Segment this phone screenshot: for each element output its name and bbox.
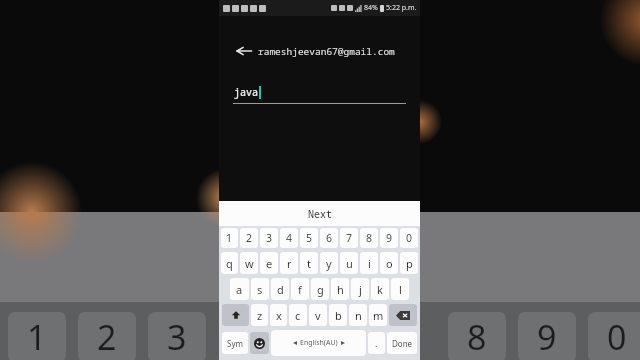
button[interactable]: 7 xyxy=(340,228,358,248)
staticText: Done xyxy=(392,338,413,349)
button[interactable]: w xyxy=(240,252,258,274)
button[interactable]: x xyxy=(270,304,287,326)
staticText: o xyxy=(386,256,393,271)
staticText: 84% xyxy=(364,3,378,13)
button[interactable]: 1 xyxy=(221,228,238,248)
staticText: y xyxy=(326,256,332,271)
button[interactable]: Emoji xyxy=(250,332,269,354)
button[interactable]: f xyxy=(291,278,309,300)
button[interactable]: English(AU) xyxy=(271,330,366,356)
staticText: 5 xyxy=(306,231,313,245)
button[interactable]: t xyxy=(300,252,318,274)
staticText: 8 xyxy=(366,231,373,245)
button[interactable]: z xyxy=(251,304,268,326)
button[interactable]: e xyxy=(260,252,278,274)
staticText: rameshjeevan67@gmail.com xyxy=(258,45,395,58)
staticText: 9 xyxy=(537,314,557,360)
button[interactable]: k xyxy=(371,278,389,300)
button[interactable]: 8 xyxy=(360,228,378,248)
staticText: 6 xyxy=(326,231,333,245)
staticText: h xyxy=(337,282,344,297)
staticText: l xyxy=(399,282,402,297)
button[interactable]: 0 xyxy=(400,228,418,248)
button[interactable]: 4 xyxy=(280,228,298,248)
staticText: 9 xyxy=(386,231,393,245)
staticText: x xyxy=(276,308,282,323)
staticText: . xyxy=(375,337,378,349)
staticText: 2 xyxy=(246,231,253,245)
staticText: r xyxy=(287,256,292,271)
staticText: English(AU) xyxy=(300,338,338,348)
button[interactable]: Backspace xyxy=(389,304,417,326)
staticText: d xyxy=(277,282,284,297)
staticText: p xyxy=(406,256,413,271)
button[interactable]: h xyxy=(331,278,349,300)
staticText: m xyxy=(373,308,384,323)
button[interactable]: 5 xyxy=(300,228,318,248)
staticText: 0 xyxy=(406,231,413,245)
staticText: q xyxy=(226,256,233,271)
staticText: 3 xyxy=(266,231,273,245)
staticText: g xyxy=(317,282,324,297)
button[interactable]: v xyxy=(309,304,327,326)
button[interactable]: Shift xyxy=(222,304,249,326)
button[interactable]: l xyxy=(391,278,409,300)
button[interactable]: p xyxy=(400,252,418,274)
button[interactable]: Sym xyxy=(222,332,248,354)
button[interactable]: j xyxy=(351,278,369,300)
button[interactable]: 3 xyxy=(260,228,278,248)
staticText: Sym xyxy=(227,338,243,349)
button[interactable]: . xyxy=(368,332,385,354)
staticText: java xyxy=(234,85,258,99)
staticText: j xyxy=(359,282,362,297)
staticText: 2 xyxy=(97,314,117,360)
button[interactable]: o xyxy=(380,252,398,274)
staticText: Next xyxy=(308,207,332,221)
staticText: s xyxy=(257,282,263,297)
button[interactable]: g xyxy=(311,278,329,300)
staticText: z xyxy=(257,308,263,323)
button[interactable]: 9 xyxy=(380,228,398,248)
button[interactable]: m xyxy=(369,304,387,326)
button[interactable]: n xyxy=(349,304,367,326)
staticText: 8 xyxy=(467,314,487,360)
button[interactable]: r xyxy=(280,252,298,274)
button[interactable]: 2 xyxy=(240,228,258,248)
button[interactable]: java xyxy=(233,85,406,104)
button[interactable]: Done xyxy=(387,332,417,354)
button[interactable]: b xyxy=(329,304,347,326)
button[interactable]: i xyxy=(360,252,378,274)
staticText: w xyxy=(245,256,254,271)
button[interactable]: c xyxy=(289,304,307,326)
button[interactable]: Next xyxy=(219,201,420,226)
staticText: 4 xyxy=(286,231,293,245)
staticText: i xyxy=(368,256,371,271)
staticText: 5:22 p.m. xyxy=(386,3,417,13)
staticText: e xyxy=(266,256,273,271)
button[interactable]: 6 xyxy=(320,228,338,248)
staticText: c xyxy=(295,308,301,323)
staticText: 7 xyxy=(346,231,353,245)
other: Back xyxy=(235,42,253,60)
staticText: f xyxy=(298,282,302,297)
staticText: n xyxy=(355,308,362,323)
button[interactable]: y xyxy=(320,252,338,274)
button[interactable]: a xyxy=(230,278,249,300)
staticText: v xyxy=(315,308,321,323)
button[interactable]: u xyxy=(340,252,358,274)
button[interactable]: q xyxy=(221,252,238,274)
staticText: 0 xyxy=(607,314,627,360)
staticText: u xyxy=(346,256,353,271)
button[interactable]: s xyxy=(251,278,269,300)
staticText: a xyxy=(236,282,243,297)
button[interactable]: d xyxy=(271,278,289,300)
button[interactable]: Back xyxy=(219,36,420,66)
staticText: k xyxy=(377,282,383,297)
staticText: b xyxy=(335,308,342,323)
staticText: 1 xyxy=(27,314,47,360)
staticText: 1 xyxy=(226,231,233,245)
staticText: 3 xyxy=(167,314,187,360)
staticText: t xyxy=(307,256,311,271)
